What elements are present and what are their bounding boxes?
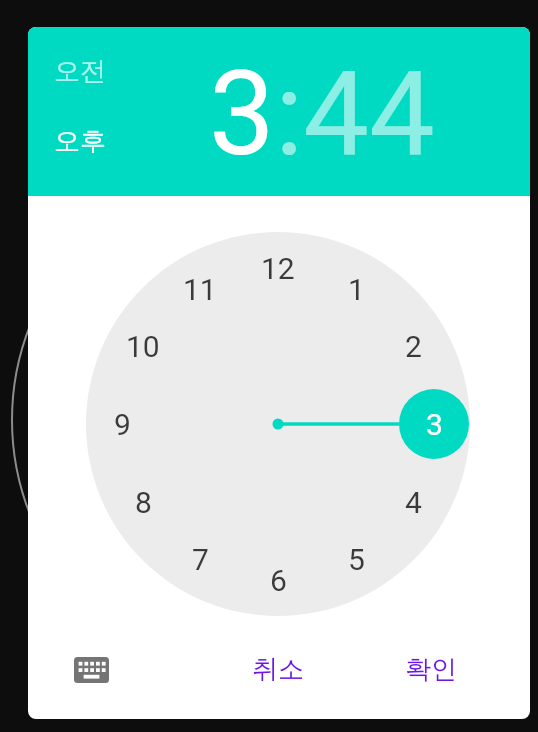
button[interactable]: 2 xyxy=(389,324,437,368)
staticText: 3 xyxy=(426,407,443,442)
button[interactable]: 9 xyxy=(98,402,146,446)
staticText: 3 xyxy=(209,45,275,182)
button[interactable] xyxy=(62,645,120,695)
button[interactable]: 취소 xyxy=(233,641,323,697)
button[interactable]: 1 xyxy=(332,267,380,311)
staticText: 8 xyxy=(135,485,152,520)
button[interactable]: 8 xyxy=(119,480,167,524)
staticText: 7 xyxy=(192,542,209,577)
staticText: :44 xyxy=(275,45,435,182)
staticText: 11 xyxy=(183,272,217,307)
staticText: 9 xyxy=(114,407,131,442)
staticText: 오전 xyxy=(54,55,106,88)
staticText: 6 xyxy=(270,563,287,598)
staticText: 오후 xyxy=(54,125,106,158)
staticText: 취소 xyxy=(252,653,304,686)
staticText: 10 xyxy=(126,329,160,364)
staticText: 1 xyxy=(348,272,365,307)
button[interactable]: 6 xyxy=(254,558,302,602)
button[interactable]: 12 xyxy=(254,246,302,290)
staticText: 5 xyxy=(348,542,365,577)
button[interactable]: 5 xyxy=(332,537,380,581)
button[interactable]: 11 xyxy=(176,267,224,311)
button[interactable]: 확인 xyxy=(386,641,476,697)
staticText: 확인 xyxy=(405,653,457,686)
button[interactable]: 오전 xyxy=(40,49,120,93)
staticText: 12 xyxy=(261,251,295,286)
button[interactable]: 오후 xyxy=(40,119,120,163)
staticText: 2 xyxy=(405,329,422,364)
button[interactable]: 4 xyxy=(389,480,437,524)
staticText: 4 xyxy=(405,485,422,520)
button[interactable]: 10 xyxy=(119,324,167,368)
button[interactable]: 7 xyxy=(176,537,224,581)
button[interactable]: 3 xyxy=(410,402,458,446)
